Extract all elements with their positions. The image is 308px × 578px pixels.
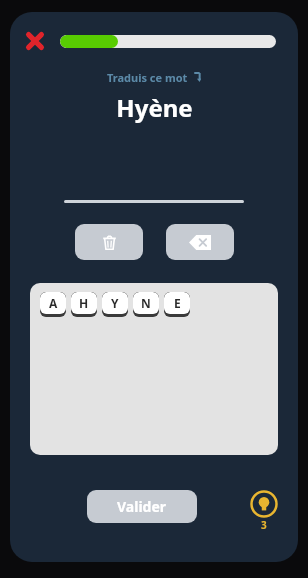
- button[interactable]: Valider: [87, 490, 197, 523]
- staticText: Traduis ce mot: [107, 70, 188, 85]
- staticText: A: [49, 295, 58, 311]
- staticText: Y: [111, 295, 119, 311]
- button[interactable]: Close: [22, 28, 48, 54]
- button[interactable]: Clear all: [75, 224, 143, 260]
- staticText: N: [141, 295, 151, 311]
- staticText: H: [79, 295, 89, 311]
- button[interactable]: Y: [102, 292, 128, 317]
- button[interactable]: E: [164, 292, 190, 317]
- staticText: Valider: [117, 497, 167, 516]
- button[interactable]: N: [133, 292, 159, 317]
- button[interactable]: Backspace: [166, 224, 234, 260]
- button[interactable]: Hint: [250, 490, 278, 532]
- staticText: 3: [261, 518, 267, 532]
- staticText: Hyène: [116, 91, 193, 124]
- button[interactable]: H: [71, 292, 97, 317]
- staticText: E: [174, 295, 181, 311]
- button[interactable]: A: [40, 292, 66, 317]
